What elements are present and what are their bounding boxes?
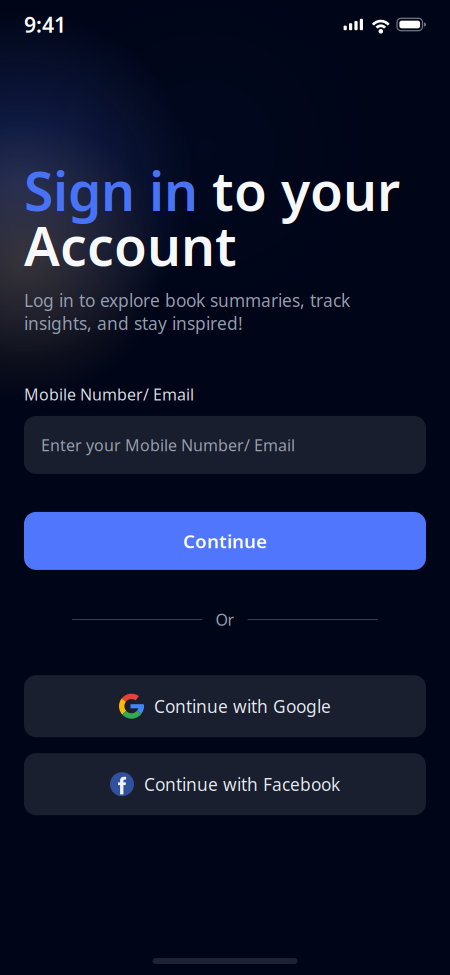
staticText: Mobile Number/ Email [24,384,194,405]
staticText: Account [24,210,237,281]
staticText: Continue [183,528,267,553]
staticText: Continue with Google [154,695,331,718]
staticText: Enter your Mobile Number/ Email [41,434,295,455]
staticText: Sign in [24,155,198,226]
staticText: Or [215,609,234,630]
staticText: to your [198,155,400,226]
button[interactable]: Continue [0,512,450,570]
staticText: 9:41 [24,10,66,39]
staticText: Continue with Facebook [144,773,340,796]
button[interactable]: Continue with Facebook [0,753,450,815]
staticText: Log in to explore book summaries, track … [24,289,350,335]
button[interactable]: Continue with Google [0,675,450,737]
